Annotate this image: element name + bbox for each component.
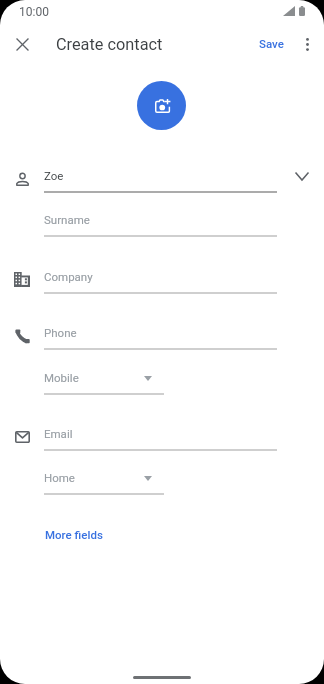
button[interactable]: Home [44, 467, 164, 495]
button[interactable]: Email [44, 423, 277, 451]
staticText: Create contact [56, 35, 163, 54]
button[interactable]: Expand name fields [289, 163, 315, 189]
staticText: Save [259, 37, 284, 50]
button[interactable]: Company [44, 266, 277, 294]
button[interactable]: Save [252, 32, 291, 55]
staticText: Phone [44, 326, 77, 339]
button[interactable]: More options [291, 28, 323, 60]
staticText: More fields [45, 528, 103, 541]
button[interactable]: More fields [37, 522, 111, 547]
button[interactable]: Phone [44, 322, 277, 350]
button[interactable]: Close [4, 26, 40, 62]
staticText: Home [44, 471, 75, 484]
staticText: 10:00 [19, 5, 49, 19]
button[interactable]: Zoe [44, 165, 277, 193]
staticText: Email [44, 427, 73, 440]
button[interactable]: Mobile [44, 367, 164, 395]
staticText: Mobile [44, 371, 79, 384]
staticText: Zoe [44, 169, 64, 182]
button[interactable]: Add photo [137, 81, 186, 130]
staticText: Surname [44, 213, 90, 226]
staticText: Company [44, 270, 93, 283]
button[interactable]: Surname [44, 209, 277, 237]
